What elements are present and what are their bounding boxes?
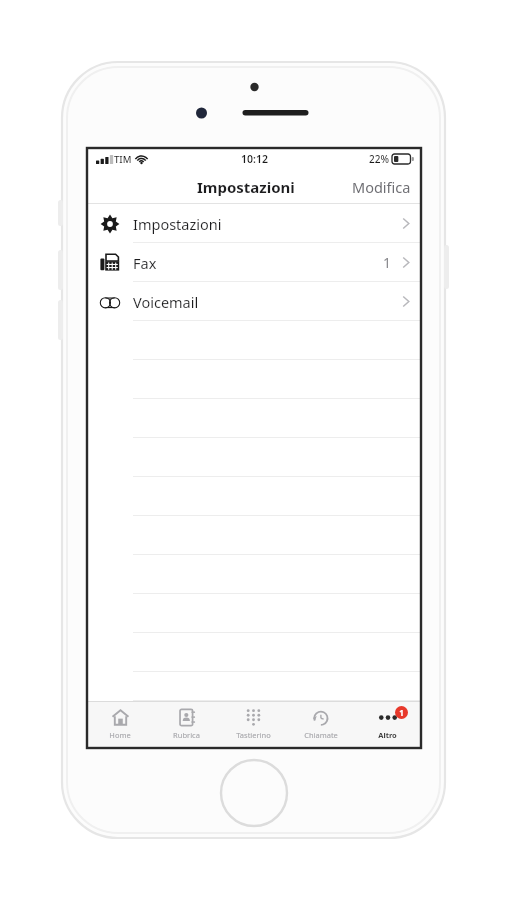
button[interactable]: 1 [354, 702, 421, 748]
staticText: Tastierino [236, 730, 271, 740]
staticText: Home [109, 730, 131, 740]
staticText: TIM [114, 153, 132, 166]
staticText: Chiamate [304, 730, 338, 740]
button[interactable]: Chiamate [287, 702, 354, 748]
staticText: Rubrica [173, 730, 200, 740]
button[interactable]: Fax [87, 243, 421, 282]
button[interactable]: Home [87, 702, 153, 748]
button[interactable]: Impostazioni [87, 204, 421, 243]
button[interactable]: Rubrica [153, 702, 220, 748]
staticText: Impostazioni [133, 214, 222, 234]
staticText: 1 [383, 253, 392, 272]
button[interactable]: Voicemail [87, 282, 421, 321]
staticText: 1 [399, 707, 404, 718]
staticText: Modifica [352, 177, 411, 197]
staticText: Voicemail [133, 292, 199, 312]
staticText: Fax [133, 253, 157, 273]
staticText: Impostazioni [197, 177, 295, 197]
button[interactable]: Tastierino [220, 702, 287, 748]
staticText: 10:12 [241, 152, 268, 166]
button[interactable]: Modifica [342, 171, 421, 203]
staticText: 22% [369, 152, 389, 166]
staticText: Altro [378, 730, 397, 740]
